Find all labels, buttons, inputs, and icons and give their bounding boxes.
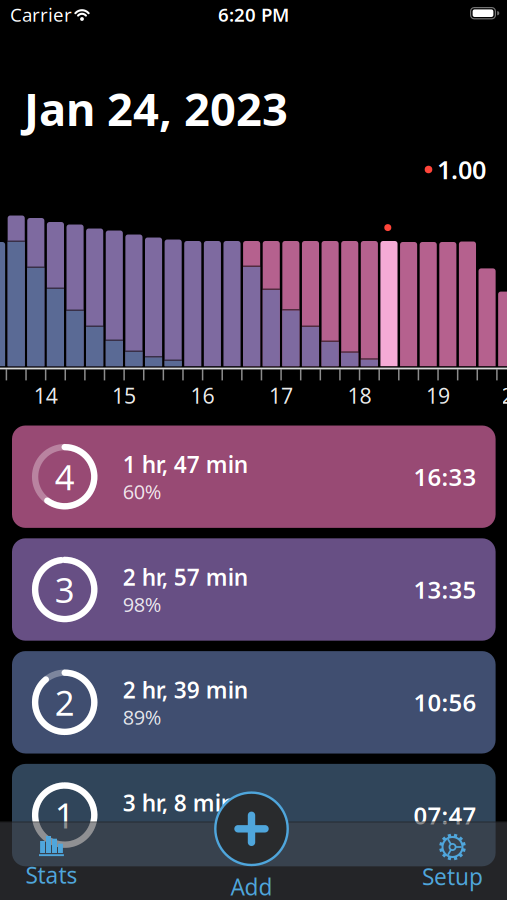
button[interactable]: 1 xyxy=(12,764,496,866)
button[interactable]: 4 xyxy=(12,425,496,528)
staticText: 17 xyxy=(269,381,293,410)
staticText: 19 xyxy=(426,381,450,410)
staticText: 3 xyxy=(55,566,75,612)
button[interactable]: Stats xyxy=(0,828,103,900)
staticText: 15 xyxy=(112,381,136,410)
staticText: 1 xyxy=(55,792,75,838)
staticText: 2 hr, 57 min xyxy=(123,562,248,592)
staticText: 18 xyxy=(348,381,372,410)
staticText: 89% xyxy=(123,704,162,730)
staticText: 1 hr, 47 min xyxy=(123,449,248,479)
button[interactable]: Setup xyxy=(401,828,504,900)
staticText: 10:56 xyxy=(414,686,477,718)
staticText: Carrier xyxy=(10,2,72,27)
staticText: Setup xyxy=(422,861,483,891)
staticText: 2 hr, 39 min xyxy=(123,675,248,705)
button[interactable]: 3 xyxy=(12,538,496,641)
button[interactable]: 2 xyxy=(12,651,496,753)
staticText: 07:47 xyxy=(414,799,477,831)
staticText: 1.00 xyxy=(437,153,486,186)
staticText: 60% xyxy=(123,478,162,505)
staticText: 6:20 PM xyxy=(218,2,289,27)
staticText: 3 hr, 8 min xyxy=(123,787,235,818)
staticText: 13:35 xyxy=(414,574,477,605)
staticText: Add xyxy=(230,872,272,900)
staticText: 20 xyxy=(501,381,507,410)
staticText: 14 xyxy=(34,381,58,410)
staticText: 16:33 xyxy=(414,461,477,493)
staticText: 2 xyxy=(55,679,75,725)
staticText: 98% xyxy=(123,591,162,618)
staticText: Jan 24, 2023 xyxy=(24,78,288,139)
button[interactable]: Add xyxy=(200,791,303,899)
staticText: 4 xyxy=(55,454,75,500)
staticText: Stats xyxy=(25,860,77,890)
staticText: 16 xyxy=(191,381,215,410)
